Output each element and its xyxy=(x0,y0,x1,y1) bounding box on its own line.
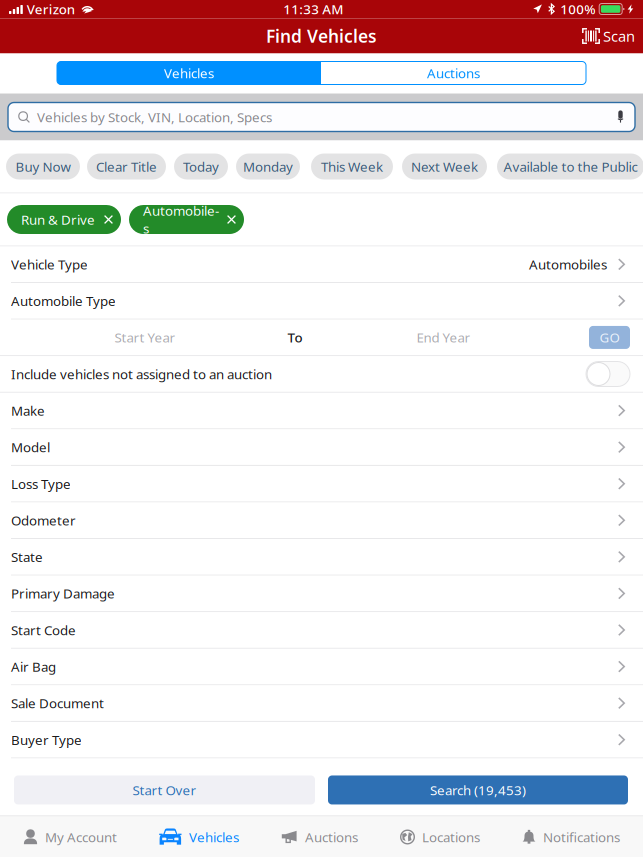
staticText: 11:33 AM xyxy=(283,0,343,18)
button[interactable]: Buyer Type xyxy=(0,722,643,758)
button[interactable]: Vehicles by Stock, VIN, Location, Specs xyxy=(8,102,635,131)
button[interactable]: Clear Title xyxy=(87,153,174,179)
staticText: My Account xyxy=(45,828,117,846)
button[interactable]: Sale Document xyxy=(0,685,643,722)
staticText: Next Week xyxy=(411,158,478,175)
staticText: Verizon xyxy=(27,0,75,18)
staticText: Start Year xyxy=(114,329,175,346)
button[interactable]: Search (19,453) xyxy=(328,775,628,804)
staticText: Primary Damage xyxy=(11,585,115,602)
button[interactable]: Next Week xyxy=(402,153,497,179)
staticText: Odometer xyxy=(11,511,76,529)
staticText: Loss Type xyxy=(11,475,71,493)
staticText: Air Bag xyxy=(11,658,56,675)
staticText: Vehicles by Stock, VIN, Location, Specs xyxy=(37,108,272,126)
button[interactable]: End Year xyxy=(335,320,552,355)
button[interactable]: Primary Damage xyxy=(0,576,643,612)
staticText: End Year xyxy=(416,329,470,346)
staticText: Vehicles xyxy=(189,828,239,846)
staticText: Notifications xyxy=(543,828,620,846)
button[interactable]: State xyxy=(0,539,643,576)
button[interactable]: Loss Type xyxy=(0,466,643,502)
button[interactable]: Today xyxy=(174,153,236,179)
staticText: Automobile Type xyxy=(11,292,116,310)
button[interactable]: Start Year xyxy=(35,320,255,355)
button[interactable]: Run & Drive xyxy=(7,205,121,234)
staticText: Auctions xyxy=(427,64,480,82)
button[interactable]: Start Code xyxy=(0,612,643,649)
staticText: Find Vehicles xyxy=(266,24,377,47)
staticText: Make xyxy=(11,402,45,419)
button[interactable]: Available to the Public xyxy=(497,153,643,179)
staticText: Clear Title xyxy=(96,158,157,175)
button[interactable]: Auctions xyxy=(321,61,586,84)
button[interactable]: To xyxy=(255,320,335,355)
button[interactable]: Auctions xyxy=(262,816,377,857)
button[interactable]: Vehicles xyxy=(140,816,258,857)
button[interactable]: Start Over xyxy=(14,775,315,804)
staticText: This Week xyxy=(321,158,383,175)
staticText: Buy Now xyxy=(15,158,70,175)
staticText: Start Code xyxy=(11,621,76,639)
button[interactable]: My Account xyxy=(4,816,136,857)
staticText: Run & Drive xyxy=(21,211,95,228)
button[interactable]: Automobiles xyxy=(129,205,244,234)
staticText: Locations xyxy=(422,828,480,846)
staticText: Start Over xyxy=(132,781,196,799)
button[interactable]: Vehicle Type xyxy=(0,246,643,283)
button[interactable]: Buy Now xyxy=(6,153,87,179)
staticText: GO xyxy=(599,329,619,346)
staticText: Search (19,453) xyxy=(430,781,526,799)
button[interactable]: Model xyxy=(0,429,643,466)
staticText: Sale Document xyxy=(11,694,104,712)
button[interactable]: This Week xyxy=(311,153,402,179)
staticText: Vehicle Type xyxy=(11,255,88,273)
staticText: Vehicles xyxy=(164,64,214,82)
staticText: State xyxy=(11,548,43,566)
button[interactable]: Include vehicles not assigned to an auct… xyxy=(586,361,630,386)
button[interactable]: Air Bag xyxy=(0,649,643,685)
staticText: Include vehicles not assigned to an auct… xyxy=(11,365,272,383)
staticText: Buyer Type xyxy=(11,731,82,749)
button[interactable]: Odometer xyxy=(0,502,643,539)
button[interactable]: Automobile Type xyxy=(0,283,643,320)
staticText: Automobiles xyxy=(143,202,219,237)
staticText: 100% xyxy=(560,0,595,18)
button[interactable]: Notifications xyxy=(503,816,639,857)
staticText: Monday xyxy=(243,158,293,175)
staticText: To xyxy=(287,329,302,346)
staticText: Auctions xyxy=(305,828,358,846)
staticText: Model xyxy=(11,438,50,456)
button[interactable]: Vehicles xyxy=(57,61,321,84)
button[interactable]: Locations xyxy=(381,816,499,857)
staticText: Scan xyxy=(603,26,635,46)
button[interactable]: GO xyxy=(589,326,630,349)
staticText: Available to the Public xyxy=(503,158,637,175)
button[interactable]: Make xyxy=(0,393,643,429)
button[interactable]: Monday xyxy=(236,153,311,179)
button[interactable]: Scan barcode xyxy=(574,19,643,53)
staticText: Automobiles xyxy=(529,255,607,273)
staticText: Today xyxy=(183,158,219,175)
